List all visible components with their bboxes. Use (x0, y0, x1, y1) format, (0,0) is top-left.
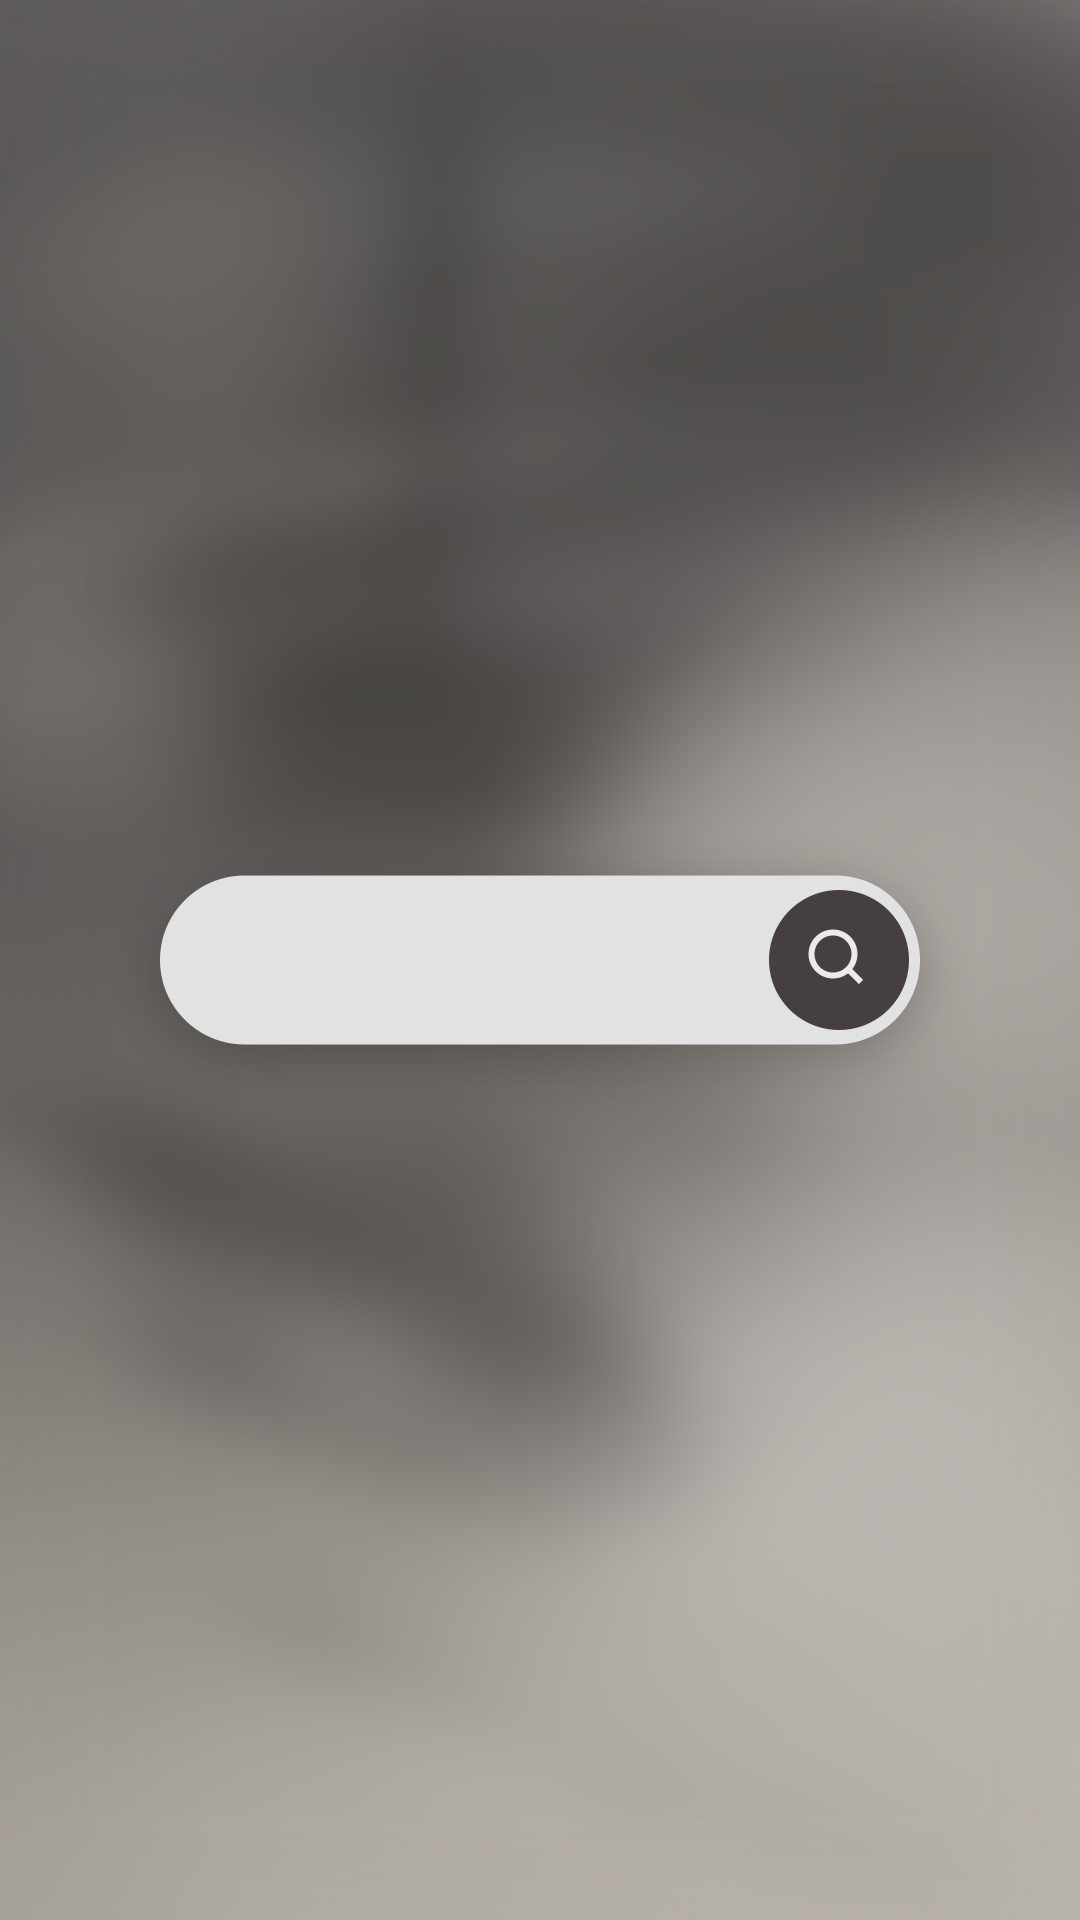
button[interactable]: Search (160, 875, 920, 1044)
